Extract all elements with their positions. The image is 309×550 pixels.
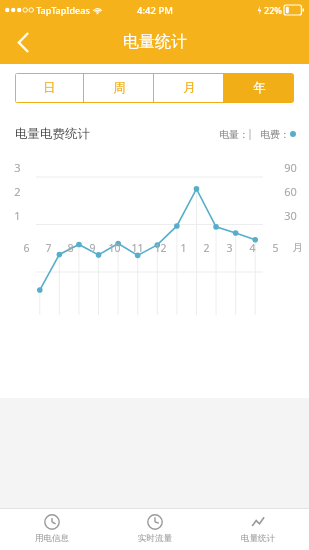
staticText: 电量统计 bbox=[241, 533, 275, 544]
staticText: 12 bbox=[154, 241, 167, 255]
staticText: TapTapIdeas bbox=[36, 4, 90, 16]
button[interactable]: Back bbox=[0, 20, 46, 64]
staticText: 4 bbox=[249, 241, 256, 255]
staticText: 1 bbox=[180, 241, 187, 255]
staticText: 日 bbox=[43, 80, 56, 96]
staticText: 实时流量 bbox=[138, 533, 172, 544]
staticText: 年 bbox=[253, 80, 266, 96]
button[interactable]: 年 bbox=[224, 73, 294, 103]
button[interactable]: 实时流量 bbox=[103, 509, 206, 550]
button[interactable]: 用电信息 bbox=[0, 509, 103, 550]
staticText: 22% bbox=[264, 4, 282, 16]
button[interactable]: 月 bbox=[154, 73, 224, 103]
staticText: 30 bbox=[284, 208, 297, 223]
staticText: 电量统计 bbox=[123, 32, 187, 52]
staticText: 8 bbox=[67, 241, 74, 255]
staticText: 6 bbox=[23, 241, 30, 255]
staticText: 月 bbox=[292, 241, 303, 254]
staticText: 月 bbox=[183, 80, 196, 96]
staticText: 2 bbox=[203, 241, 210, 255]
button[interactable]: 周 bbox=[84, 73, 154, 103]
staticText: 3 bbox=[14, 160, 21, 175]
staticText: 7 bbox=[45, 241, 52, 255]
staticText: 90 bbox=[284, 160, 297, 175]
staticText: 9 bbox=[89, 241, 96, 255]
staticText: 周 bbox=[113, 80, 126, 96]
staticText: 电量： bbox=[219, 128, 249, 141]
staticText: 用电信息 bbox=[35, 533, 69, 544]
button[interactable]: 日 bbox=[15, 73, 84, 103]
staticText: 5 bbox=[272, 241, 279, 255]
staticText: 11 bbox=[131, 241, 144, 255]
staticText: 3 bbox=[226, 241, 233, 255]
staticText: 1 bbox=[14, 208, 21, 223]
button[interactable]: 电量统计 bbox=[206, 509, 309, 550]
staticText: 10 bbox=[108, 241, 121, 255]
staticText: 电量电费统计 bbox=[15, 126, 90, 142]
staticText: 电费： bbox=[260, 128, 290, 141]
staticText: 4:42 PM bbox=[137, 4, 173, 17]
staticText: 60 bbox=[284, 184, 297, 199]
staticText: 2 bbox=[14, 184, 21, 199]
